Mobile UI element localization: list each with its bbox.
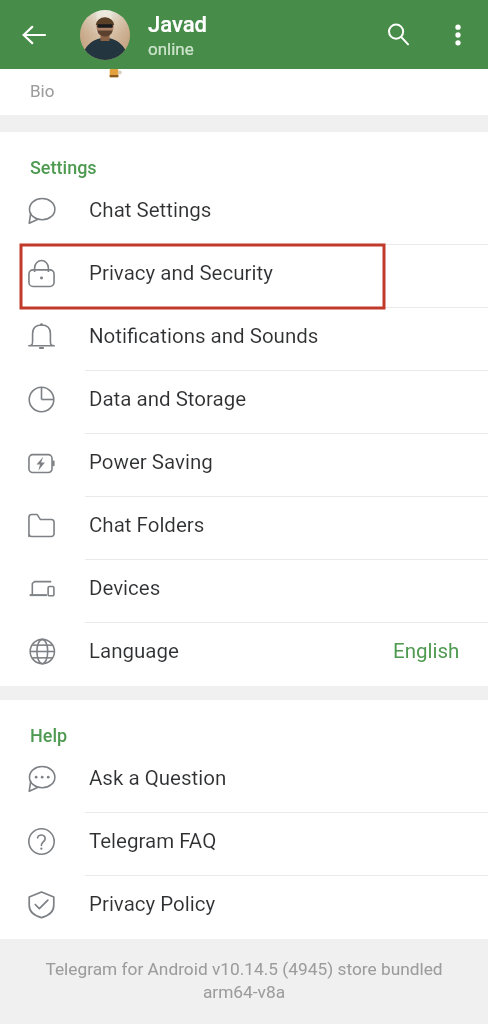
staticText: Chat Settings bbox=[89, 198, 212, 222]
staticText: English bbox=[393, 639, 460, 663]
staticText: Telegram for Android v10.14.5 (4945) sto… bbox=[0, 959, 488, 1003]
staticText: Settings bbox=[30, 157, 97, 178]
button[interactable]: Search bbox=[374, 10, 422, 58]
staticText: Privacy Policy bbox=[89, 892, 216, 916]
button[interactable]: Profile photo bbox=[80, 10, 130, 60]
staticText: Privacy and Security bbox=[89, 261, 273, 285]
button[interactable]: Power Saving bbox=[0, 434, 488, 497]
staticText: Notifications and Sounds bbox=[89, 324, 319, 348]
button[interactable]: Privacy Policy bbox=[0, 876, 488, 939]
button[interactable]: Telegram FAQ bbox=[0, 813, 488, 876]
button[interactable]: Chat Folders bbox=[0, 497, 488, 560]
button[interactable]: Chat Settings bbox=[0, 182, 488, 245]
button[interactable]: Devices bbox=[0, 560, 488, 623]
staticText: Bio bbox=[30, 81, 55, 101]
staticText: Javad bbox=[148, 12, 208, 38]
button[interactable]: Ask a Question bbox=[0, 750, 488, 813]
button[interactable]: Notifications and Sounds bbox=[0, 308, 488, 371]
staticText: Language bbox=[89, 639, 179, 663]
staticText: Data and Storage bbox=[89, 387, 247, 411]
staticText: Chat Folders bbox=[89, 513, 205, 537]
button[interactable]: Back bbox=[10, 11, 58, 59]
button[interactable]: More options bbox=[434, 11, 482, 59]
staticText: Telegram FAQ bbox=[89, 829, 217, 853]
staticText: online bbox=[148, 39, 194, 59]
button[interactable]: Privacy and Security bbox=[0, 245, 488, 308]
staticText: Devices bbox=[89, 576, 161, 600]
staticText: Ask a Question bbox=[89, 766, 227, 790]
button[interactable]: Data and Storage bbox=[0, 371, 488, 434]
button[interactable]: Language bbox=[0, 623, 488, 686]
staticText: Help bbox=[30, 725, 68, 746]
staticText: Power Saving bbox=[89, 450, 213, 474]
